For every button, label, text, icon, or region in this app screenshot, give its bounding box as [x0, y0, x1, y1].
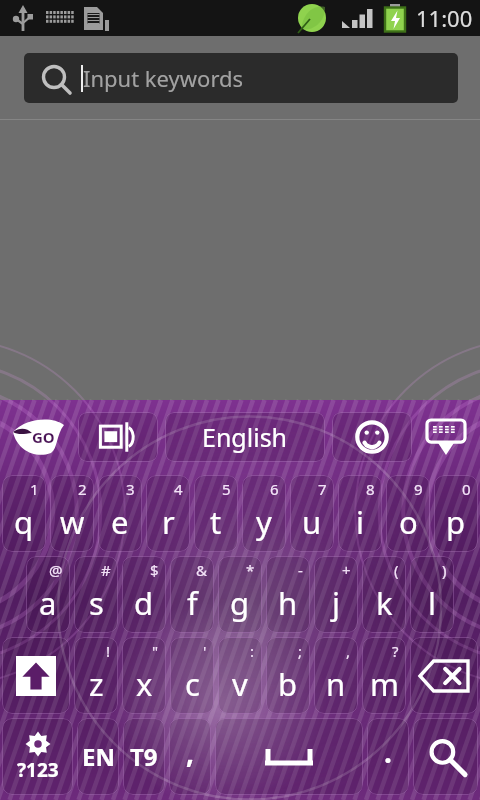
button[interactable]: - [266, 556, 310, 633]
button[interactable]: Keyboard layout [78, 412, 158, 462]
button[interactable]: 0 [434, 475, 478, 552]
staticText: m [370, 663, 399, 705]
button[interactable]: ? [362, 637, 406, 714]
staticText: e [111, 501, 129, 543]
staticText: 7 [318, 479, 327, 499]
staticText: 2 [78, 479, 87, 499]
staticText: l [428, 582, 436, 624]
button[interactable]: : [218, 637, 262, 714]
staticText: ' [203, 641, 207, 661]
button[interactable]: 3 [98, 475, 142, 552]
button[interactable]: & [170, 556, 214, 633]
staticText: v [232, 663, 248, 705]
staticText: b [278, 663, 298, 705]
staticText: & [196, 560, 207, 580]
button[interactable]: English [165, 412, 325, 462]
staticText: u [302, 501, 322, 543]
staticText: 8 [366, 479, 375, 499]
staticText: Input keywords [83, 63, 244, 93]
button[interactable]: Backspace [410, 637, 478, 714]
staticText: 4 [174, 479, 183, 499]
staticText: . [384, 733, 392, 771]
button[interactable]: # [74, 556, 118, 633]
staticText: 1 [30, 479, 39, 499]
staticText: z [89, 663, 104, 705]
button[interactable]: Search [413, 718, 478, 795]
staticText: T9 [130, 740, 158, 773]
staticText: p [446, 501, 466, 543]
button[interactable]: 5 [194, 475, 238, 552]
button[interactable]: EN [77, 718, 119, 795]
staticText: n [326, 663, 346, 705]
button[interactable]: Input keywords [24, 53, 458, 103]
button[interactable]: $ [122, 556, 166, 633]
staticText: ? [392, 641, 399, 661]
staticText: English [202, 420, 288, 454]
button[interactable]: 6 [242, 475, 286, 552]
button[interactable]: 8 [338, 475, 382, 552]
staticText: ! [106, 641, 111, 661]
staticText: 6 [270, 479, 279, 499]
staticText: h [278, 582, 298, 624]
staticText: @ [49, 560, 63, 580]
staticText: , [346, 641, 351, 661]
staticText: f [187, 582, 198, 624]
staticText: , [186, 733, 194, 771]
staticText: q [14, 501, 34, 543]
button[interactable]: Emoji [332, 412, 412, 462]
staticText: 3 [126, 479, 135, 499]
button[interactable]: GO Keyboard menu [0, 400, 78, 473]
staticText: c [185, 663, 200, 705]
staticText: - [298, 560, 303, 580]
staticText: * [246, 560, 255, 580]
button[interactable]: Hide keyboard [412, 400, 480, 473]
staticText: ) [442, 560, 447, 580]
staticText: 0 [462, 479, 471, 499]
button[interactable]: Symbols and settings [2, 718, 73, 795]
staticText: 5 [222, 479, 231, 499]
staticText: ( [394, 560, 399, 580]
staticText: ?123 [17, 757, 59, 783]
staticText: x [136, 663, 153, 705]
button[interactable]: Shift [2, 637, 70, 714]
staticText: w [60, 501, 85, 543]
staticText: 9 [414, 479, 423, 499]
button[interactable]: 9 [386, 475, 430, 552]
staticText: y [256, 501, 272, 543]
staticText: o [399, 501, 418, 543]
staticText: i [356, 501, 364, 543]
button[interactable]: T9 [123, 718, 165, 795]
staticText: EN [82, 740, 115, 773]
staticText: a [39, 582, 57, 624]
button[interactable]: , [169, 718, 211, 795]
staticText: k [376, 582, 393, 624]
button[interactable]: * [218, 556, 262, 633]
staticText: j [332, 582, 340, 624]
button[interactable]: + [314, 556, 358, 633]
button[interactable]: Space [215, 718, 363, 795]
button[interactable]: 1 [2, 475, 46, 552]
button[interactable]: 7 [290, 475, 334, 552]
button[interactable]: . [367, 718, 409, 795]
button[interactable]: " [122, 637, 166, 714]
button[interactable]: ' [170, 637, 214, 714]
button[interactable]: 4 [146, 475, 190, 552]
button[interactable]: ! [74, 637, 118, 714]
staticText: # [101, 560, 111, 580]
staticText: g [230, 582, 250, 624]
button[interactable]: @ [26, 556, 70, 633]
staticText: r [162, 501, 175, 543]
staticText: + [342, 560, 351, 580]
staticText: " [152, 641, 159, 661]
button[interactable]: , [314, 637, 358, 714]
button[interactable]: ; [266, 637, 310, 714]
staticText: 11:00 [416, 3, 473, 33]
staticText: s [89, 582, 104, 624]
button[interactable]: ) [410, 556, 454, 633]
staticText: ; [298, 641, 303, 661]
staticText: GO [32, 427, 55, 447]
staticText: : [250, 641, 255, 661]
button[interactable]: ( [362, 556, 406, 633]
staticText: $ [150, 560, 159, 580]
button[interactable]: 2 [50, 475, 94, 552]
